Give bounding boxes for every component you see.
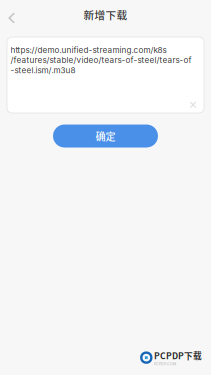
staticText: 确定 — [95, 129, 115, 143]
button[interactable]: Back — [0, 0, 22, 29]
button[interactable]: 确定 — [53, 124, 158, 147]
staticText: 新增下载 — [83, 7, 127, 22]
staticText: PCPDP下载 — [154, 349, 202, 362]
staticText: PCPDP.COM — [154, 362, 176, 366]
button[interactable]: Clear text — [190, 101, 200, 110]
staticText: https://demo.unified-streaming.com/k8s — [10, 45, 166, 55]
staticText: -steel.ism/.m3u8 — [10, 65, 75, 75]
staticText: /features/stable/video/tears-of-steel/te… — [10, 55, 191, 65]
